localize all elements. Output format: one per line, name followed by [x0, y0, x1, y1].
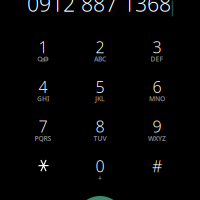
- staticText: 4: [38, 76, 47, 97]
- staticText: MNO: [149, 94, 165, 103]
- staticText: 7: [38, 116, 47, 137]
- staticText: #: [152, 155, 162, 177]
- staticText: 3: [152, 36, 161, 58]
- staticText: +: [98, 174, 102, 183]
- staticText: WXYZ: [148, 134, 166, 143]
- staticText: 0912 887 1368: [27, 0, 171, 18]
- staticText: ABC: [94, 55, 106, 63]
- staticText: 9: [152, 116, 161, 137]
- button[interactable]: 7: [16, 107, 70, 145]
- staticText: PQRS: [34, 134, 51, 143]
- staticText: DEF: [150, 55, 163, 63]
- button[interactable]: 1, voicemail: [16, 28, 70, 66]
- staticText: TUV: [93, 134, 106, 143]
- button[interactable]: 4: [16, 68, 70, 106]
- button[interactable]: 3: [130, 28, 184, 66]
- button[interactable]: 2: [73, 28, 127, 66]
- button[interactable]: 9: [130, 107, 184, 145]
- button[interactable]: 8: [73, 107, 127, 145]
- staticText: 6: [152, 76, 161, 97]
- staticText: 0: [95, 155, 104, 177]
- button[interactable]: Call: [75, 196, 125, 200]
- staticText: 2: [95, 36, 104, 58]
- staticText: GHI: [37, 94, 49, 103]
- staticText: 5: [95, 76, 104, 97]
- button[interactable]: 0: [73, 147, 127, 185]
- staticText: 1: [38, 36, 47, 58]
- button[interactable]: #: [130, 147, 184, 185]
- staticText: 8: [95, 116, 104, 137]
- staticText: JKL: [95, 94, 105, 103]
- button[interactable]: 5: [73, 68, 127, 106]
- button[interactable]: Star: [16, 147, 70, 185]
- button[interactable]: 6: [130, 68, 184, 106]
